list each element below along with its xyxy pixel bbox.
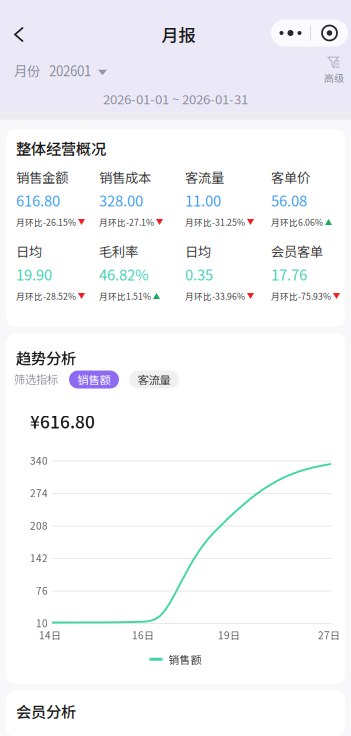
staticText: 会员客单 [271, 241, 323, 261]
staticText: 208 [30, 518, 48, 533]
staticText: 19.90 [16, 263, 52, 285]
staticText: 14日 [39, 628, 61, 642]
staticText: 销售成本 [99, 167, 151, 187]
staticText: 0.35 [185, 263, 213, 285]
button[interactable]: 返回 [2, 16, 36, 52]
staticText: 56.08 [271, 189, 307, 211]
staticText: 328.00 [99, 189, 143, 211]
staticText: ¥616.80 [30, 408, 95, 434]
staticText: 11.00 [185, 189, 221, 211]
staticText: 月环比-75.93% [271, 290, 331, 302]
staticText: 日均 [16, 241, 42, 261]
staticText: 16日 [132, 628, 154, 642]
staticText: 日均 [185, 241, 211, 261]
staticText: 整体经营概况 [16, 137, 106, 159]
staticText: 616.80 [16, 189, 60, 211]
button[interactable]: 销售额 [69, 370, 119, 388]
staticText: 月报 [161, 22, 195, 47]
staticText: 月环比6.06% [271, 216, 323, 228]
staticText: 月份 [14, 61, 40, 80]
staticText: 月环比-28.52% [16, 290, 76, 302]
staticText: 10 [36, 616, 48, 630]
staticText: 会员分析 [16, 700, 76, 722]
staticText: 趋势分析 [16, 346, 76, 369]
staticText: 月环比-26.15% [16, 216, 76, 228]
staticText: 高级 [324, 70, 344, 85]
button[interactable]: 更多 [271, 19, 348, 46]
staticText: 客流量 [137, 371, 170, 388]
staticText: 17.76 [271, 263, 307, 285]
button[interactable]: 客流量 [129, 370, 179, 388]
staticText: 销售金额 [16, 167, 68, 187]
staticText: 筛选指标 [14, 370, 58, 387]
staticText: 274 [30, 486, 48, 500]
button[interactable]: 高级筛选 [322, 56, 346, 85]
staticText: 月环比-33.96% [185, 290, 245, 302]
staticText: 毛利率 [99, 241, 138, 261]
staticText: 客流量 [185, 167, 224, 187]
staticText: 202601 [49, 61, 91, 80]
staticText: 月环比-31.25% [185, 216, 245, 228]
staticText: 76 [36, 583, 48, 598]
staticText: 销售额 [77, 371, 110, 388]
staticText: 27日 [318, 628, 340, 642]
staticText: 客单价 [271, 167, 310, 187]
staticText: 19日 [218, 628, 240, 642]
staticText: 月环比1.51% [99, 290, 151, 302]
staticText: 月环比-27.1% [99, 216, 154, 228]
button[interactable]: 月份 [12, 61, 109, 79]
staticText: 46.82% [99, 263, 149, 285]
staticText: 142 [30, 551, 48, 565]
staticText: 340 [30, 453, 48, 468]
staticText: 2026-01-01 ~ 2026-01-31 [103, 89, 248, 108]
staticText: 销售额 [168, 651, 201, 667]
